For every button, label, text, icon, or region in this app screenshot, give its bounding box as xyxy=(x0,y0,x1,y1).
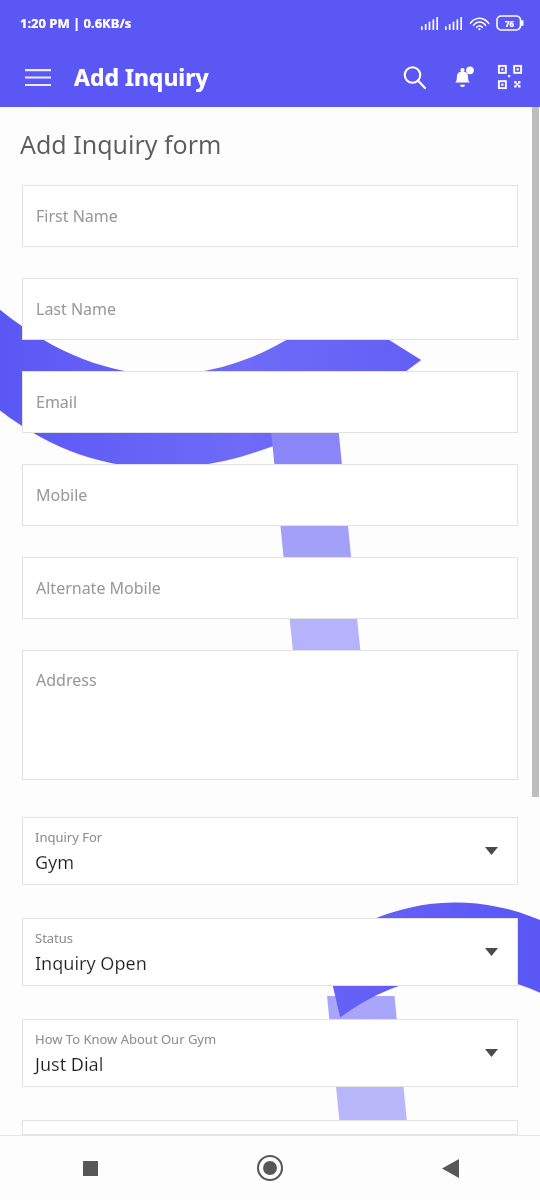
button[interactable]: Notifications xyxy=(438,53,486,101)
staticText: Just Dial xyxy=(35,1052,104,1077)
button[interactable]: First Name xyxy=(22,185,518,247)
staticText: Add Inquiry form xyxy=(20,127,222,161)
button[interactable]: Last Name xyxy=(22,278,518,340)
staticText: Last Name xyxy=(36,298,117,320)
staticText: Gym xyxy=(35,850,75,875)
button[interactable]: Recent apps xyxy=(0,1136,180,1200)
staticText: Mobile xyxy=(36,484,88,506)
staticText: Alternate Mobile xyxy=(36,577,161,599)
button[interactable]: Back xyxy=(360,1136,540,1200)
button[interactable]: Address xyxy=(22,650,518,780)
staticText: Inquiry Open xyxy=(35,951,147,976)
button[interactable]: Scan QR code xyxy=(486,53,534,101)
staticText: Email xyxy=(36,391,78,413)
staticText: Status xyxy=(35,929,74,947)
button[interactable]: Status xyxy=(22,918,518,986)
staticText: 1:20 PM | 0.6KB/s xyxy=(20,14,132,32)
staticText: Inquiry For xyxy=(35,828,103,846)
staticText: Add Inquiry xyxy=(74,61,209,92)
staticText: First Name xyxy=(36,205,118,227)
staticText: Address xyxy=(36,669,97,691)
button[interactable]: Open navigation menu xyxy=(10,49,66,105)
staticText: 76 xyxy=(505,18,515,29)
button[interactable]: Home xyxy=(180,1136,360,1200)
button[interactable]: Inquiry For xyxy=(22,817,518,885)
button[interactable]: Search xyxy=(390,53,438,101)
button[interactable]: How To Know About Our Gym xyxy=(22,1019,518,1087)
button[interactable]: Mobile xyxy=(22,464,518,526)
button[interactable]: Alternate Mobile xyxy=(22,557,518,619)
button[interactable]: Email xyxy=(22,371,518,433)
staticText: How To Know About Our Gym xyxy=(35,1030,217,1048)
button[interactable] xyxy=(22,1120,518,1135)
